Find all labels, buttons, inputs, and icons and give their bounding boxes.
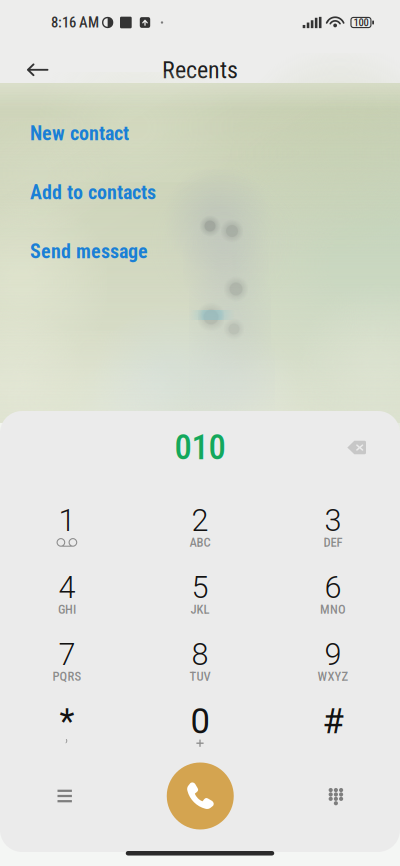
staticText: 0 — [190, 701, 209, 742]
button[interactable]: 8 — [142, 640, 258, 707]
staticText: 010 — [174, 427, 225, 468]
staticText: 2 — [191, 502, 208, 538]
button[interactable]: 7 — [9, 640, 125, 707]
staticText: GHI — [58, 602, 76, 617]
button[interactable]: Add to contacts — [0, 163, 400, 222]
staticText: 8 — [191, 636, 208, 672]
staticText: 100 — [353, 16, 368, 29]
staticText: 8:16 AM — [51, 14, 99, 31]
button[interactable]: 3 — [275, 506, 391, 573]
button[interactable]: 4 — [9, 573, 125, 640]
staticText: 4 — [58, 569, 75, 605]
button[interactable]: # — [275, 707, 391, 774]
button[interactable]: Delete — [333, 427, 380, 468]
staticText: PQRS — [52, 669, 81, 684]
button[interactable]: New contact — [0, 104, 400, 163]
button[interactable]: 1 — [9, 506, 125, 573]
button[interactable]: Back — [14, 51, 61, 89]
staticText: 9 — [324, 636, 341, 672]
staticText: 5 — [191, 569, 208, 605]
staticText: Recents — [162, 56, 238, 84]
staticText: JKL — [190, 602, 209, 617]
staticText: # — [322, 701, 343, 742]
staticText: Send message — [30, 240, 148, 263]
staticText: MNO — [320, 602, 346, 617]
staticText: ABC — [189, 535, 210, 550]
staticText: 7 — [58, 636, 75, 672]
staticText: New contact — [30, 122, 129, 145]
button[interactable]: * — [9, 707, 125, 774]
button[interactable]: Call log — [36, 769, 93, 823]
button[interactable]: 9 — [275, 640, 391, 707]
staticText: 6 — [324, 569, 341, 605]
button[interactable]: 2 — [142, 506, 258, 573]
staticText: TUV — [189, 669, 210, 684]
button[interactable]: Keypad — [308, 767, 363, 825]
button[interactable]: Send message — [0, 222, 400, 281]
staticText: Add to contacts — [30, 181, 156, 204]
button[interactable]: 5 — [142, 573, 258, 640]
staticText: 1 — [58, 502, 75, 538]
staticText: 3 — [324, 502, 341, 538]
button[interactable]: 0 — [142, 707, 258, 774]
staticText: WXYZ — [317, 669, 348, 684]
staticText: DEF — [323, 535, 342, 550]
button[interactable]: Call — [167, 762, 234, 829]
staticText: * — [59, 701, 74, 742]
button[interactable]: 6 — [275, 573, 391, 640]
